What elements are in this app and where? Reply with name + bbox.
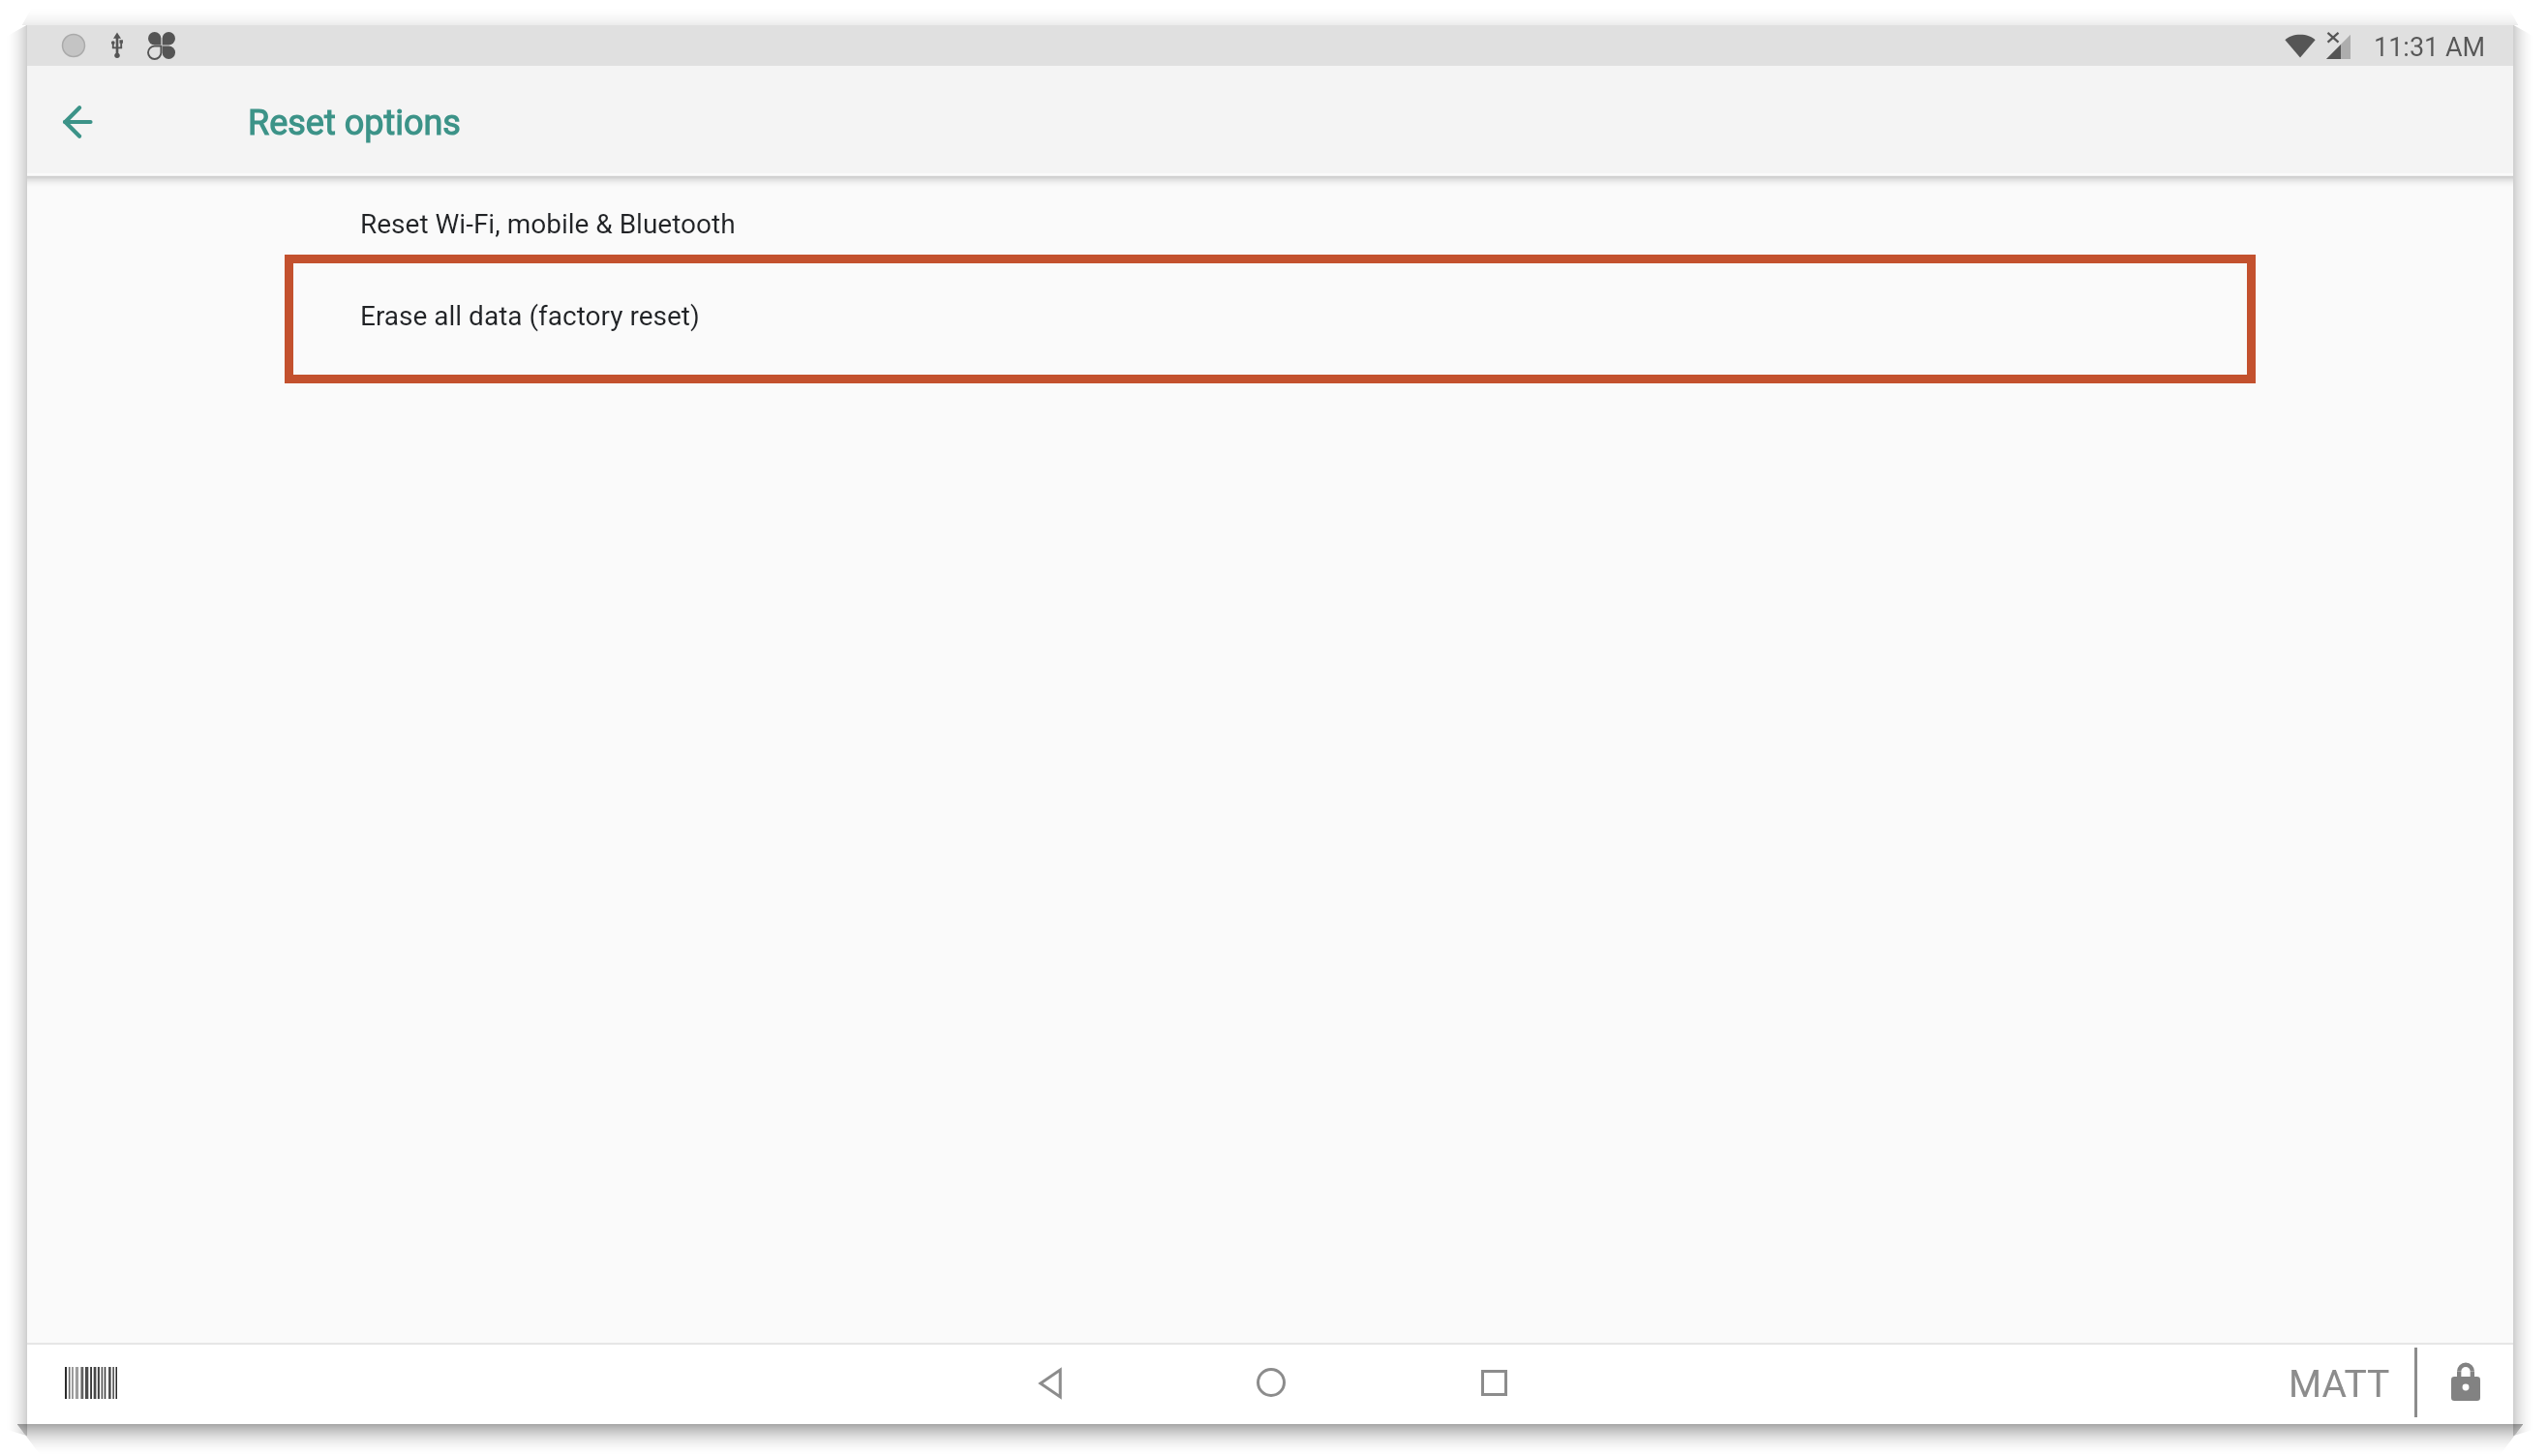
button[interactable]: Home [1248, 1359, 1294, 1406]
button[interactable]: Back [1027, 1360, 1074, 1407]
button[interactable]: Recents [1471, 1359, 1517, 1406]
button[interactable]: Erase all data (factory reset) [27, 255, 2513, 383]
staticText: Reset options [248, 103, 461, 143]
button[interactable]: Back [44, 88, 111, 156]
staticText: 11:31 AM [2374, 32, 2486, 63]
button[interactable]: Reset Wi-Fi, mobile & Bluetooth [27, 173, 2513, 255]
staticText: MATT [2289, 1362, 2390, 1407]
staticText: Erase all data (factory reset) [360, 300, 700, 332]
staticText: Reset Wi-Fi, mobile & Bluetooth [360, 208, 736, 240]
button[interactable]: Lock [2444, 1361, 2487, 1404]
